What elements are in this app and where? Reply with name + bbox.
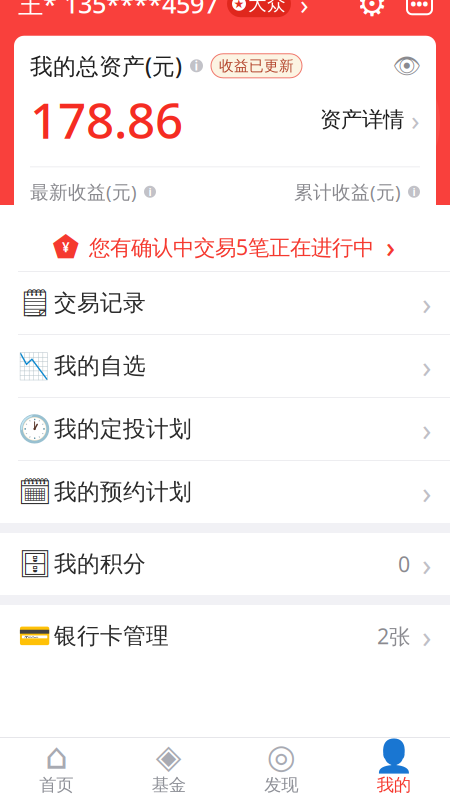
staticText: 🗄: [18, 549, 52, 579]
staticText: 0.04: [30, 207, 75, 237]
button[interactable]: ⌂: [0, 738, 112, 800]
staticText: 累计收益(元): [294, 179, 401, 204]
staticText: 👁: [392, 53, 421, 79]
staticText: 0: [398, 550, 410, 578]
staticText: ★: [233, 0, 244, 10]
staticText: 我的总资产(元): [30, 51, 182, 81]
staticText: 大众: [248, 0, 286, 15]
staticText: 👤: [374, 738, 414, 775]
button[interactable]: 资产详情: [320, 101, 420, 138]
staticText: 我的预约计划: [54, 478, 192, 506]
staticText: •••: [410, 0, 428, 13]
staticText: ›: [422, 544, 432, 584]
button[interactable]: 隐藏资产: [394, 55, 420, 77]
staticText: ›: [422, 409, 432, 449]
staticText: i: [194, 58, 198, 74]
staticText: ›: [422, 472, 432, 512]
staticText: 📉: [18, 351, 50, 380]
staticText: 首页: [39, 774, 73, 796]
staticText: 王* 135****4597: [18, 0, 218, 20]
staticText: 您有确认中交易5笔正在进行中: [89, 233, 374, 261]
staticText: ›: [422, 346, 432, 386]
staticText: ›: [411, 101, 420, 138]
staticText: 我的积分: [54, 550, 146, 578]
staticText: 收益已更新: [219, 57, 294, 75]
staticText: 🗒: [18, 288, 52, 318]
staticText: 交易记录: [54, 289, 146, 317]
button[interactable]: 👤: [337, 738, 450, 800]
staticText: ›: [386, 228, 395, 266]
staticText: i: [412, 185, 415, 199]
staticText: 2张: [377, 622, 410, 650]
staticText: ¥: [62, 238, 70, 256]
staticText: ⌃: [43, 52, 147, 193]
staticText: 发现: [264, 774, 298, 796]
staticText: 银行卡管理: [54, 622, 169, 650]
button[interactable]: 🗓: [0, 461, 450, 523]
staticText: ⚙: [356, 0, 387, 23]
button[interactable]: 消息: [407, 0, 432, 14]
staticText: 🕐: [18, 414, 51, 444]
staticText: ◈: [156, 737, 182, 775]
button[interactable]: 🗄: [0, 533, 450, 595]
staticText: 💳: [18, 621, 51, 651]
staticText: 🗓: [18, 477, 52, 507]
button[interactable]: 设置: [357, 0, 387, 19]
staticText: 178.86: [30, 87, 183, 152]
staticText: ⬟: [52, 230, 79, 264]
button[interactable]: 王* 135****4597: [18, 0, 309, 22]
staticText: 资产详情: [320, 106, 404, 133]
staticText: 我的定投计划: [54, 415, 192, 443]
button[interactable]: 🕐: [0, 398, 450, 460]
staticText: i: [148, 185, 151, 199]
staticText: 最新收益(元): [30, 179, 137, 204]
staticText: 我的自选: [54, 352, 146, 380]
button[interactable]: ⬟: [0, 223, 450, 271]
staticText: ›: [422, 283, 432, 323]
staticText: ›: [300, 0, 309, 22]
button[interactable]: 🗒: [0, 272, 450, 334]
staticText: 基金: [152, 774, 186, 796]
staticText: ⌃: [313, 52, 417, 193]
staticText: 我的: [377, 774, 411, 796]
button[interactable]: 📉: [0, 335, 450, 397]
button[interactable]: 💳: [0, 605, 450, 667]
staticText: ◎: [267, 737, 296, 775]
staticText: ›: [422, 616, 432, 656]
button[interactable]: ◈: [112, 738, 225, 800]
button[interactable]: ◎: [225, 738, 337, 800]
staticText: ⌂: [45, 736, 68, 777]
